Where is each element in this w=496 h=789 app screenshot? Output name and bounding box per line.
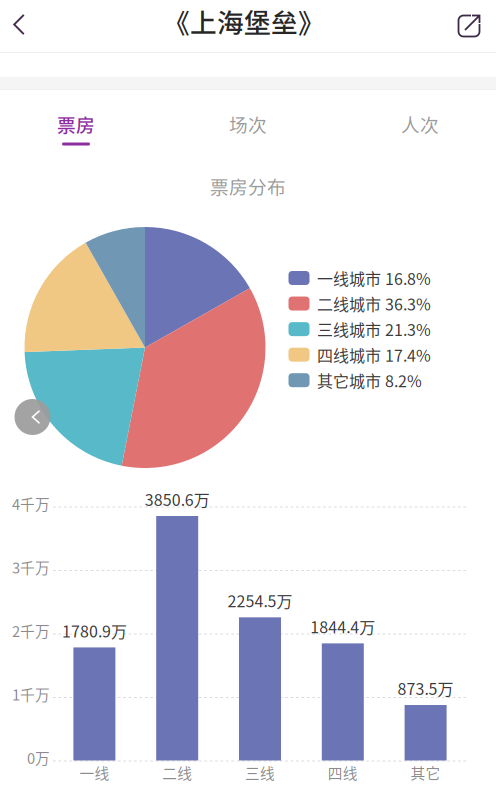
staticText: 其它 — [411, 762, 441, 783]
staticText: 3850.6万 — [145, 487, 210, 511]
staticText: 四线城市 17.4% — [317, 343, 431, 366]
staticText: 场次 — [229, 110, 267, 137]
staticText: 一线城市 16.8% — [317, 266, 431, 290]
staticText: 873.5万 — [398, 676, 454, 700]
staticText: 2254.5万 — [227, 589, 292, 612]
button[interactable]: 票房 — [0, 104, 162, 152]
staticText: 二线城市 36.3% — [317, 292, 431, 315]
button[interactable]: Share — [447, 4, 491, 48]
staticText: 人次 — [401, 110, 439, 137]
button[interactable]: Back — [0, 2, 41, 47]
staticText: 票房分布 — [210, 172, 286, 199]
staticText: 1844.4万 — [310, 615, 375, 638]
button[interactable]: 场次 — [162, 104, 334, 152]
staticText: 3千万 — [12, 556, 50, 578]
staticText: 一线 — [79, 762, 109, 783]
staticText: 2千万 — [12, 620, 50, 641]
staticText: 《上海堡垒》 — [163, 2, 325, 40]
staticText: 三线 — [245, 762, 275, 783]
staticText: 三线城市 21.3% — [317, 317, 431, 341]
staticText: 1千万 — [12, 683, 50, 705]
staticText: 4千万 — [12, 493, 50, 514]
staticText: 二线 — [162, 762, 192, 783]
staticText: 其它城市 8.2% — [317, 369, 422, 392]
button[interactable]: 人次 — [334, 104, 496, 152]
button[interactable]: Previous — [14, 399, 50, 435]
staticText: 四线 — [328, 762, 358, 783]
staticText: 票房 — [57, 110, 95, 137]
staticText: 1780.9万 — [62, 619, 127, 642]
staticText: 0万 — [27, 747, 50, 768]
